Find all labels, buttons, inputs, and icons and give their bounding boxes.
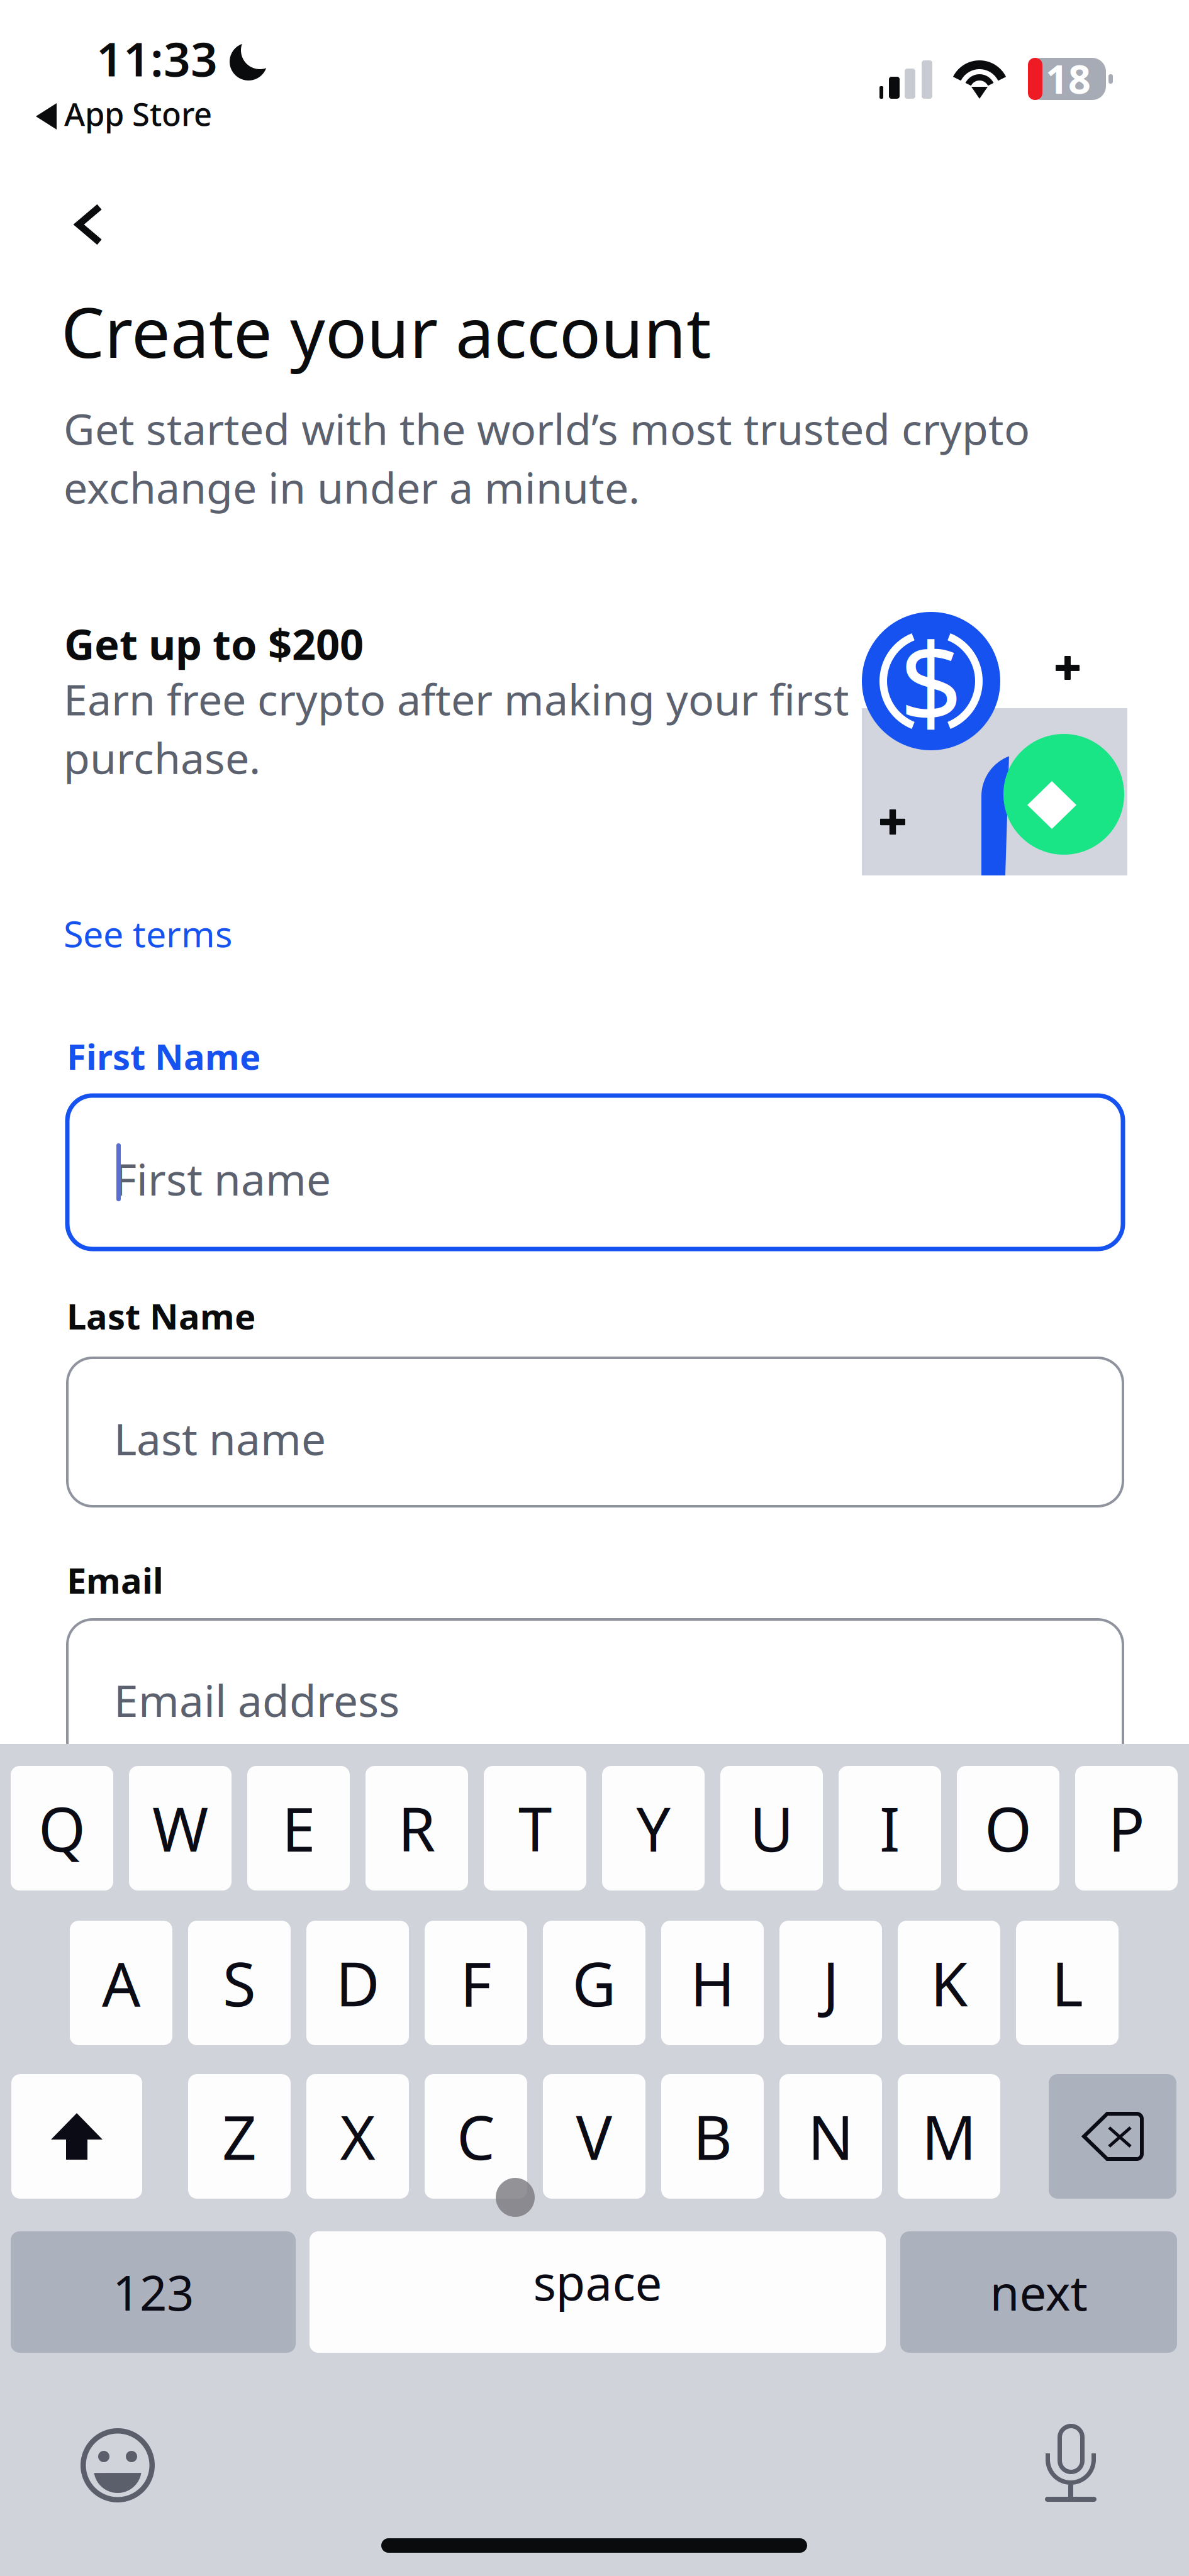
staticText: 11:33	[96, 27, 218, 89]
button[interactable]: E	[247, 1766, 350, 1890]
staticText: O	[985, 1788, 1032, 1868]
button[interactable]: T	[484, 1766, 586, 1890]
button[interactable]: Z	[188, 2074, 291, 2199]
button[interactable]: First name	[67, 1096, 1123, 1249]
button[interactable]: Delete	[1049, 2074, 1176, 2199]
button[interactable]: C	[425, 2074, 527, 2199]
staticText: E	[282, 1788, 315, 1868]
button[interactable]: G	[543, 1921, 645, 2045]
staticText: next	[990, 2260, 1087, 2324]
button[interactable]: U	[720, 1766, 823, 1890]
button[interactable]: V	[543, 2074, 645, 2199]
staticText: Y	[636, 1788, 670, 1868]
staticText: V	[576, 2096, 612, 2177]
button[interactable]: M	[898, 2074, 1000, 2199]
button[interactable]: L	[1016, 1921, 1119, 2045]
button[interactable]: Dictation	[1045, 2424, 1097, 2502]
staticText: W	[152, 1788, 208, 1868]
staticText: M	[922, 2096, 976, 2177]
staticText: $	[899, 607, 963, 754]
button[interactable]: Email address	[67, 1619, 1123, 1768]
staticText: 123	[113, 2260, 194, 2324]
button[interactable]: F	[425, 1921, 527, 2045]
button[interactable]: next	[900, 2231, 1177, 2353]
staticText: F	[460, 1943, 492, 2023]
button[interactable]: K	[898, 1921, 1000, 2045]
button[interactable]: See terms	[64, 909, 232, 957]
staticText: U	[750, 1788, 794, 1868]
staticText: First Name	[67, 1033, 260, 1079]
staticText: See terms	[64, 909, 232, 957]
staticText: Earn free crypto after making your first…	[64, 670, 849, 786]
button[interactable]: N	[779, 2074, 882, 2199]
button[interactable]: Q	[11, 1766, 113, 1890]
button[interactable]: Last name	[67, 1358, 1123, 1506]
staticText: Get started with the world’s most truste…	[64, 400, 1030, 515]
staticText: D	[336, 1943, 380, 2023]
staticText: G	[572, 1943, 616, 2023]
staticText: H	[690, 1943, 735, 2023]
button[interactable]: Y	[602, 1766, 705, 1890]
button[interactable]: Shift	[11, 2074, 142, 2199]
staticText: K	[930, 1943, 968, 2023]
staticText: P	[1108, 1788, 1145, 1868]
staticText: space	[533, 2250, 662, 2314]
staticText: A	[102, 1943, 140, 2023]
staticText: Q	[38, 1788, 86, 1868]
button[interactable]: P	[1075, 1766, 1178, 1890]
staticText: N	[808, 2096, 854, 2177]
button[interactable]: space	[310, 2231, 886, 2353]
button[interactable]: Back	[43, 189, 125, 270]
staticText: Get up to $200	[64, 616, 364, 671]
button[interactable]: W	[129, 1766, 232, 1890]
staticText: R	[398, 1788, 436, 1868]
staticText: Last Name	[67, 1292, 255, 1339]
staticText: App Store	[64, 92, 212, 135]
button[interactable]: J	[779, 1921, 882, 2045]
staticText: I	[879, 1788, 900, 1868]
staticText: S	[223, 1943, 256, 2023]
button[interactable]: H	[661, 1921, 764, 2045]
staticText: Last name	[114, 1409, 326, 1467]
staticText: T	[518, 1788, 552, 1868]
staticText: L	[1052, 1943, 1083, 2023]
button[interactable]: A	[70, 1921, 172, 2045]
button[interactable]: O	[957, 1766, 1059, 1890]
button[interactable]: I	[839, 1766, 941, 1890]
staticText: First name	[114, 1150, 331, 1208]
button[interactable]: 123	[11, 2231, 296, 2353]
staticText: Z	[222, 2096, 257, 2177]
button[interactable]: R	[366, 1766, 468, 1890]
staticText: J	[823, 1943, 839, 2023]
staticText: 18	[1046, 52, 1091, 105]
staticText: C	[457, 2096, 495, 2177]
staticText: Create your account	[61, 286, 711, 377]
staticText: Email	[67, 1557, 164, 1603]
button[interactable]: D	[306, 1921, 409, 2045]
staticText: X	[340, 2096, 375, 2177]
button[interactable]: Emoji keyboard	[81, 2428, 155, 2502]
staticText: B	[693, 2096, 732, 2177]
staticText: Email address	[114, 1671, 399, 1729]
button[interactable]: X	[306, 2074, 409, 2199]
button[interactable]: B	[661, 2074, 764, 2199]
button[interactable]: S	[188, 1921, 291, 2045]
